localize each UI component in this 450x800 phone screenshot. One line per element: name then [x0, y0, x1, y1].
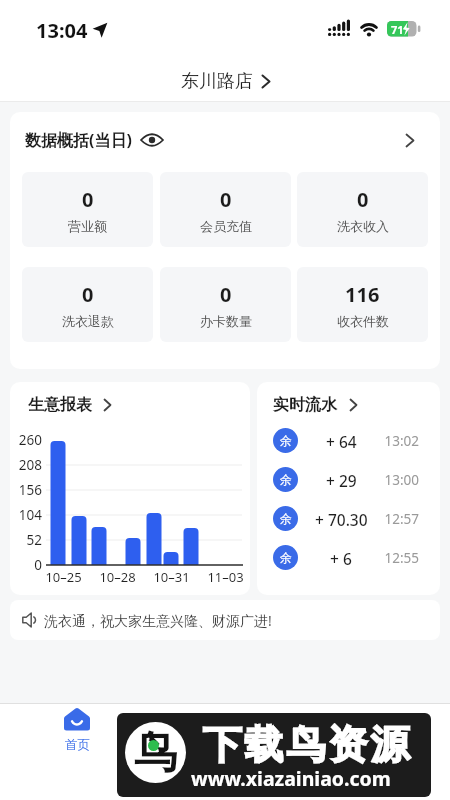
staticText: + 6 [330, 548, 352, 569]
button[interactable]: 东川路店 [0, 66, 450, 96]
button[interactable] [140, 132, 164, 148]
staticText: 260 [18, 431, 42, 449]
staticText: 办卡数量 [200, 313, 252, 329]
staticText: 会员充值 [200, 218, 252, 234]
staticText: 首页 [65, 737, 90, 753]
button[interactable]: 0 [22, 172, 153, 247]
staticText: 洗衣通，祝大家生意兴隆、财源广进! [44, 611, 272, 630]
staticText: 0 [82, 186, 94, 213]
staticText: 收衣件数 [337, 313, 389, 329]
staticText: 208 [18, 456, 42, 474]
staticText: 生意报表 [28, 395, 92, 415]
staticText: 余 [280, 550, 292, 565]
staticText: 11–03 [207, 568, 244, 586]
button[interactable] [398, 128, 422, 152]
staticText: + 70.30 [315, 509, 368, 530]
staticText: 洗衣退款 [62, 313, 114, 329]
staticText: 116 [345, 281, 380, 308]
staticText: + 29 [326, 470, 357, 491]
button[interactable]: 116 [297, 267, 428, 342]
staticText: 13:00 [384, 471, 419, 489]
staticText: www.xiazainiao.com [191, 765, 391, 791]
staticText: 余 [280, 511, 292, 526]
staticText: 实时流水 [273, 395, 337, 415]
staticText: 余 [280, 433, 292, 448]
staticText: 0 [220, 281, 232, 308]
staticText: 12:55 [384, 549, 419, 567]
staticText: 洗衣收入 [337, 218, 389, 234]
staticText: + 64 [326, 431, 357, 452]
staticText: 鸟 [134, 726, 177, 780]
staticText: 71 [391, 22, 404, 36]
button[interactable]: 实时流水 [273, 393, 357, 417]
staticText: 10–31 [153, 568, 190, 586]
staticText: 10–25 [45, 568, 82, 586]
staticText: 52 [26, 531, 42, 549]
staticText: 13:04 [36, 17, 88, 41]
staticText: 0 [220, 186, 232, 213]
button[interactable]: 0 [160, 172, 291, 247]
button[interactable]: 0 [22, 267, 153, 342]
staticText: 10–28 [99, 568, 136, 586]
staticText: 东川路店 [181, 70, 253, 93]
staticText: 营业额 [68, 218, 107, 234]
button[interactable]: 洗衣通，祝大家生意兴隆、财源广进! [10, 600, 440, 640]
staticText: 0 [357, 186, 369, 213]
staticText: 0 [34, 556, 42, 574]
button[interactable]: 生意报表 [28, 393, 111, 417]
staticText: 13:02 [384, 432, 419, 450]
button[interactable]: 0 [297, 172, 428, 247]
staticText: 104 [18, 506, 42, 524]
button[interactable]: 首页 [52, 708, 102, 760]
staticText: 下载鸟资源 [201, 720, 411, 769]
staticText: 0 [82, 281, 94, 308]
staticText: 数据概括(当日) [25, 129, 132, 151]
button[interactable]: 0 [160, 267, 291, 342]
staticText: 156 [18, 481, 42, 499]
staticText: 余 [280, 472, 292, 487]
staticText: 12:57 [384, 510, 419, 528]
